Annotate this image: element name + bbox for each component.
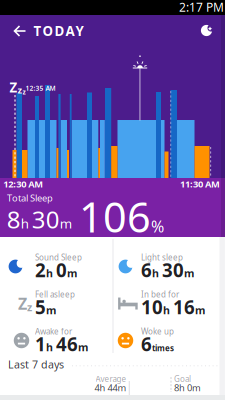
staticText: 4h 44m xyxy=(94,381,126,394)
staticText: Fell asleep xyxy=(35,289,75,300)
staticText: 6times xyxy=(141,332,174,356)
staticText: Woke up xyxy=(141,326,174,337)
staticText: 12:35 AM xyxy=(25,84,55,93)
staticText: Total Sleep xyxy=(7,192,53,204)
button[interactable]: Sleep mode xyxy=(198,23,214,37)
staticText: Light sleep xyxy=(141,252,183,263)
staticText: In bed for xyxy=(141,289,179,300)
button[interactable]: Back xyxy=(14,25,26,36)
staticText: 1h 46m xyxy=(35,332,88,356)
staticText: 10h 16m xyxy=(141,295,205,319)
staticText: Goal xyxy=(174,373,191,384)
staticText: 8h 0m xyxy=(174,381,201,394)
staticText: 106% xyxy=(79,189,164,244)
staticText: Sound Sleep xyxy=(35,252,82,263)
staticText: Last 7 days xyxy=(8,357,64,371)
staticText: T O D A Y xyxy=(33,22,83,40)
staticText: 6h 30m xyxy=(141,258,194,282)
staticText: 12:30 AM xyxy=(3,178,43,190)
staticText: 2h 0m xyxy=(35,258,77,282)
staticText: Average xyxy=(95,373,126,384)
staticText: 11:30 AM xyxy=(180,178,220,190)
staticText: 8h 30m xyxy=(7,203,72,235)
staticText: 2:17 PM xyxy=(179,0,224,15)
staticText: Zzz xyxy=(9,79,25,96)
staticText: 5m xyxy=(35,295,56,319)
staticText: Awake for xyxy=(35,326,72,337)
staticText: Zz xyxy=(18,293,32,314)
